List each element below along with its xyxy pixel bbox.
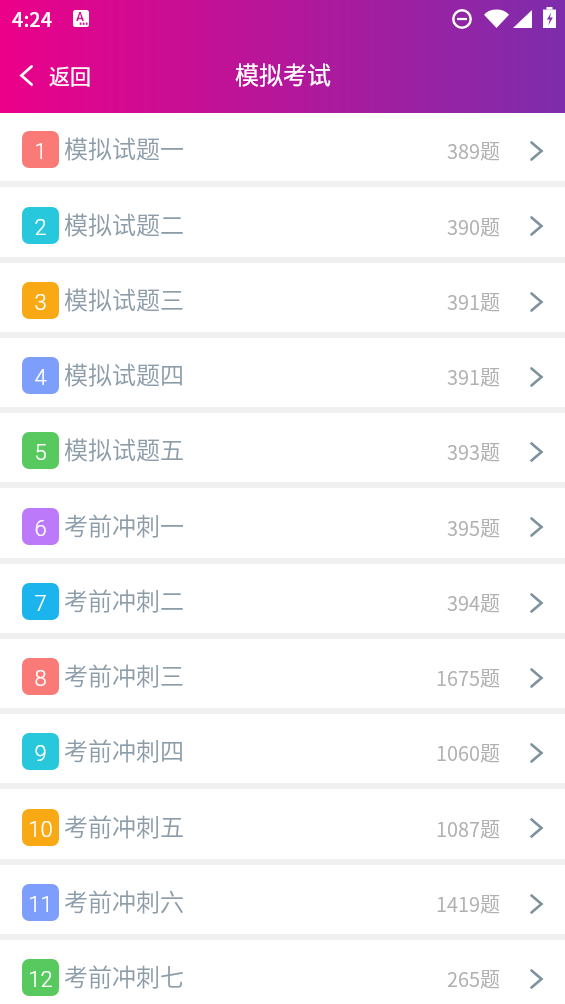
staticText: 391题 <box>447 287 500 316</box>
staticText: 11 <box>28 892 53 918</box>
button[interactable]: 6 <box>0 489 565 559</box>
staticText: 考前冲刺六 <box>64 883 184 918</box>
staticText: 3 <box>34 290 47 316</box>
button[interactable]: 12 <box>0 941 565 1004</box>
button[interactable]: 9 <box>0 715 565 784</box>
staticText: 4 <box>34 365 47 391</box>
staticText: 395题 <box>447 513 500 542</box>
button[interactable]: 8 <box>0 640 565 709</box>
staticText: 考前冲刺五 <box>64 808 184 843</box>
staticText: 12 <box>28 967 53 993</box>
staticText: 模拟试题三 <box>64 281 184 316</box>
staticText: 考前冲刺二 <box>64 582 184 617</box>
staticText: 1060题 <box>436 738 500 767</box>
staticText: 模拟试题一 <box>64 130 184 165</box>
staticText: A <box>76 10 85 24</box>
staticText: 2 <box>34 215 47 241</box>
staticText: 1087题 <box>436 814 500 843</box>
staticText: 6 <box>34 516 47 542</box>
staticText: 390题 <box>447 212 500 241</box>
staticText: 1419题 <box>436 889 500 918</box>
staticText: 394题 <box>447 588 500 617</box>
staticText: 1 <box>34 139 47 165</box>
staticText: 模拟考试 <box>235 56 331 91</box>
staticText: 8 <box>34 666 47 692</box>
staticText: 7 <box>34 591 47 617</box>
staticText: 265题 <box>447 964 500 993</box>
staticText: 模拟试题二 <box>64 206 184 241</box>
button[interactable]: 7 <box>0 565 565 634</box>
staticText: 10 <box>28 817 53 843</box>
button[interactable]: 3 <box>0 264 565 333</box>
staticText: 返回 <box>49 60 91 90</box>
staticText: 4:24 <box>12 4 53 33</box>
button[interactable]: 10 <box>0 790 565 860</box>
staticText: 模拟试题四 <box>64 356 184 391</box>
staticText: 考前冲刺三 <box>64 657 184 692</box>
staticText: 考前冲刺七 <box>64 958 184 993</box>
staticText: 9 <box>34 741 47 767</box>
staticText: 1675题 <box>436 663 500 692</box>
button[interactable]: 5 <box>0 414 565 483</box>
staticText: 393题 <box>447 437 500 466</box>
button[interactable]: 1 <box>0 113 565 182</box>
staticText: 考前冲刺四 <box>64 732 184 767</box>
staticText: 考前冲刺一 <box>64 507 184 542</box>
staticText: 389题 <box>447 136 500 165</box>
staticText: 模拟试题五 <box>64 431 184 466</box>
button[interactable]: 11 <box>0 866 565 935</box>
button[interactable]: 4 <box>0 339 565 408</box>
button[interactable]: 2 <box>0 188 565 258</box>
button[interactable]: 返回 <box>6 52 105 98</box>
staticText: 5 <box>34 440 47 466</box>
staticText: 391题 <box>447 362 500 391</box>
